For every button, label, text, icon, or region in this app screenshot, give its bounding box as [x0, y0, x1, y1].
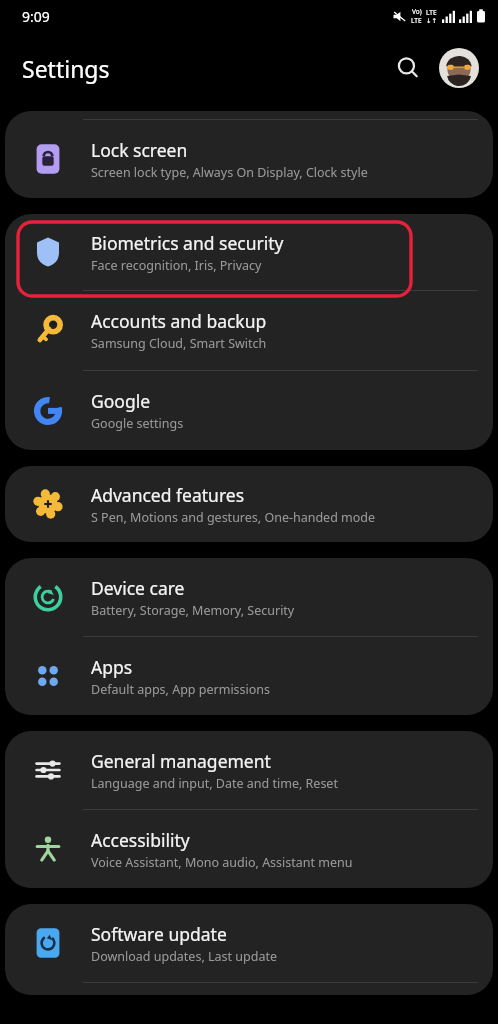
- staticText: LTE: [411, 16, 422, 25]
- button[interactable]: Lock screen: [5, 120, 493, 198]
- staticText: Biometrics and security: [91, 231, 284, 255]
- staticText: Accessibility: [91, 828, 190, 852]
- staticText: LTE: [426, 8, 437, 17]
- staticText: Device care: [91, 576, 185, 600]
- button[interactable]: General management: [5, 731, 493, 809]
- staticText: Apps: [91, 655, 133, 679]
- staticText: Voice Assistant, Mono audio, Assistant m…: [91, 854, 353, 871]
- button[interactable]: Biometrics and security: [5, 214, 493, 290]
- button[interactable]: Search settings: [386, 46, 430, 90]
- button[interactable]: Accounts and backup: [5, 291, 493, 370]
- staticText: Language and input, Date and time, Reset: [91, 775, 338, 792]
- staticText: Face recognition, Iris, Privacy: [91, 257, 262, 274]
- staticText: Vo): [412, 7, 422, 16]
- staticText: Google: [91, 389, 151, 413]
- button[interactable]: Samsung account profile: [438, 47, 480, 89]
- button[interactable]: Accessibility: [5, 810, 493, 888]
- staticText: Lock screen: [91, 138, 188, 162]
- staticText: Google settings: [91, 415, 184, 432]
- staticText: Settings: [22, 53, 110, 84]
- button[interactable]: Device care: [5, 558, 493, 636]
- staticText: Screen lock type, Always On Display, Clo…: [91, 164, 368, 181]
- button[interactable]: Google: [5, 371, 493, 450]
- button[interactable]: Apps: [5, 637, 493, 715]
- staticText: Default apps, App permissions: [91, 681, 271, 698]
- staticText: 9:09: [22, 7, 50, 26]
- staticText: Accounts and backup: [91, 309, 267, 333]
- staticText: Download updates, Last update: [91, 948, 277, 965]
- button[interactable]: Advanced features: [5, 466, 493, 542]
- staticText: General management: [91, 749, 271, 773]
- staticText: ↓↑: [426, 17, 437, 25]
- staticText: Software update: [91, 922, 227, 946]
- button[interactable]: Software update: [5, 904, 493, 982]
- staticText: Battery, Storage, Memory, Security: [91, 602, 295, 619]
- staticText: S Pen, Motions and gestures, One-handed …: [91, 509, 376, 526]
- staticText: Samsung Cloud, Smart Switch: [91, 335, 267, 352]
- staticText: Advanced features: [91, 483, 245, 507]
